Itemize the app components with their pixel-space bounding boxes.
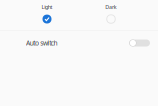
staticText: Light: [41, 3, 53, 11]
staticText: Auto switch: [26, 39, 57, 47]
button[interactable]: Dark: [94, 2, 128, 24]
button[interactable]: Off: [0, 31, 158, 55]
staticText: Dark: [105, 3, 117, 11]
button[interactable]: Light: [30, 2, 64, 24]
